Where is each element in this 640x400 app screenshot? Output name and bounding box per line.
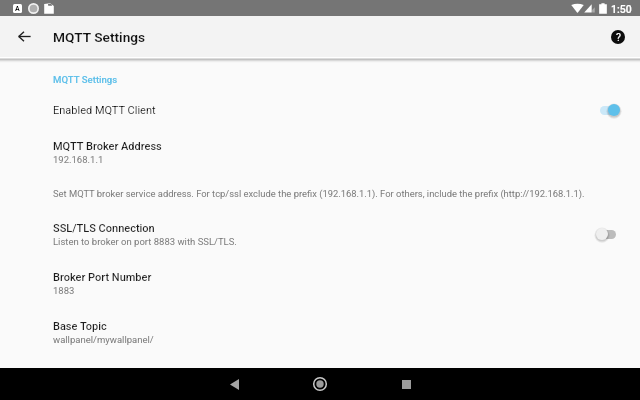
staticText: 1883 <box>53 285 75 296</box>
staticText: 192.168.1.1 <box>53 154 104 165</box>
button[interactable]: Back <box>4 16 44 57</box>
staticText: 1:50 <box>611 3 632 15</box>
button[interactable]: Help <box>598 17 638 57</box>
button[interactable]: SSL/TLS Connection toggle <box>596 226 622 242</box>
button[interactable]: SSL/TLS Connection <box>0 215 640 255</box>
staticText: MQTT Settings <box>53 29 146 45</box>
button[interactable]: Home <box>304 368 336 400</box>
button[interactable]: Enabled MQTT Client toggle <box>596 102 622 118</box>
staticText: MQTT Broker Address <box>53 140 162 153</box>
button[interactable]: Base Topic <box>0 313 640 351</box>
staticText: Enabled MQTT Client <box>53 104 156 117</box>
staticText: Broker Port Number <box>53 271 152 284</box>
staticText: wallpanel/mywallpanel/ <box>53 334 154 345</box>
button[interactable]: Back <box>218 368 250 400</box>
button[interactable]: Broker Port Number <box>0 264 640 302</box>
staticText: Base Topic <box>53 320 107 333</box>
button[interactable]: Enabled MQTT Client <box>0 94 640 126</box>
staticText: ? <box>616 31 621 43</box>
staticText: A <box>15 5 20 13</box>
staticText: Set MQTT broker service address. For tcp… <box>53 188 585 199</box>
button[interactable]: Recents <box>390 368 422 400</box>
staticText: SSL/TLS Connection <box>53 222 155 235</box>
staticText: MQTT Settings <box>53 74 118 85</box>
staticText: Listen to broker on port 8883 with SSL/T… <box>53 236 237 247</box>
button[interactable]: MQTT Broker Address <box>0 133 640 171</box>
